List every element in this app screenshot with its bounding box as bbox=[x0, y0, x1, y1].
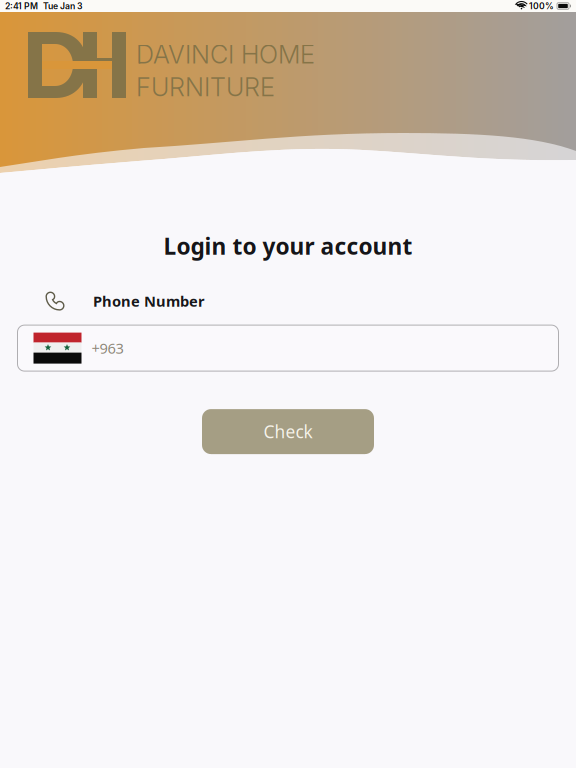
staticText: +963 bbox=[91, 338, 123, 358]
staticText: 100% bbox=[529, 1, 554, 11]
staticText: DAVINCI HOME bbox=[136, 39, 315, 70]
button[interactable]: Check bbox=[202, 409, 374, 454]
staticText: Login to your account bbox=[163, 231, 412, 261]
staticText: Check bbox=[263, 420, 312, 443]
staticText: 2:41 PM bbox=[5, 1, 38, 11]
staticText: Phone Number bbox=[93, 291, 205, 311]
staticText: Tue Jan 3 bbox=[43, 1, 83, 11]
staticText: FURNITURE bbox=[136, 72, 275, 102]
